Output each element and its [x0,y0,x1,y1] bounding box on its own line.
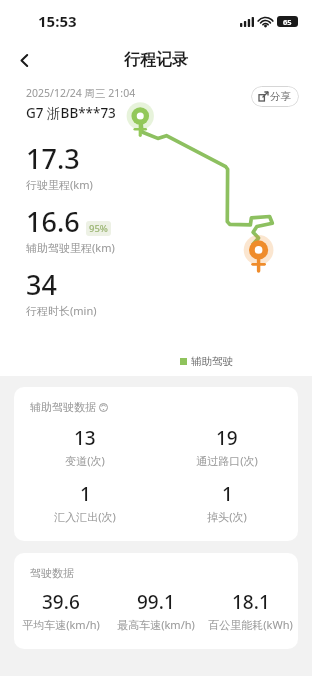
staticText: 18.1 [232,589,270,615]
staticText: 驾驶数据 [30,566,74,580]
staticText: 最高车速(km/h) [117,617,195,632]
staticText: 99.1 [137,589,175,615]
staticText: 分享 [270,90,291,103]
staticText: G7 浙BB***73 [26,104,116,122]
staticText: 行驶里程(km) [26,177,93,192]
staticText: 平均车速(km/h) [22,617,100,632]
staticText: 1 [80,481,91,507]
staticText: 行程时长(min) [26,303,97,318]
staticText: 95% [89,222,108,235]
button[interactable]: Back [8,44,40,76]
staticText: 汇入汇出(次) [54,509,116,524]
staticText: 辅助驾驶里程(km) [26,240,115,255]
staticText: 变道(次) [65,453,105,468]
staticText: 2025/12/24 周三 21:04 [26,86,136,100]
staticText: 13 [74,425,96,451]
staticText: 辅助驾驶数据 [30,400,96,414]
staticText: 34 [26,266,57,303]
staticText: 行程记录 [124,50,188,70]
staticText: 15:53 [38,11,77,31]
staticText: 通过路口(次) [196,453,258,468]
staticText: 掉头(次) [207,509,247,524]
staticText: 16.6 [26,203,80,240]
staticText: 百公里能耗(kWh) [208,617,293,632]
staticText: 65 [283,17,292,27]
staticText: 辅助驾驶 [191,355,233,368]
button[interactable]: 分享 [251,86,299,107]
staticText: 1 [222,481,233,507]
staticText: 19 [216,425,238,451]
staticText: 39.6 [42,589,80,615]
staticText: 17.3 [26,140,80,177]
